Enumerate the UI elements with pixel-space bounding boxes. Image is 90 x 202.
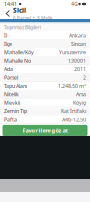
staticText: 2 [83, 74, 86, 81]
staticText: Sicil [13, 6, 26, 15]
staticText: Kat İrtifakı [61, 108, 86, 115]
staticText: 4G [71, 1, 77, 7]
staticText: Mevkii [4, 99, 20, 106]
button[interactable]: Geri [3, 8, 13, 19]
staticText: Ada [4, 66, 13, 73]
staticText: Taşınmaz Bilgileri [4, 24, 41, 31]
staticText: Yunusemre [59, 49, 86, 56]
staticText: Mahalle/Köy [4, 49, 34, 56]
staticText: Pafta [4, 116, 17, 123]
staticText: 2011 [74, 66, 86, 73]
staticText: Parsel [4, 74, 18, 81]
staticText: 1.248,50 m² [58, 82, 86, 89]
staticText: 6 Parsel • 3 Malik [13, 15, 52, 21]
staticText: Mahalle No [4, 57, 31, 64]
staticText: Nitelik [4, 91, 19, 98]
staticText: İl [4, 32, 7, 39]
staticText: Zemin Tip [4, 108, 27, 115]
staticText: A4b-12,50 [62, 116, 86, 123]
staticText: Tapu Alanı [4, 82, 27, 89]
staticText: Arsa [76, 91, 86, 98]
staticText: 14:41 [4, 0, 17, 8]
staticText: Ankara [69, 32, 86, 39]
staticText: İlçe [4, 40, 12, 47]
button[interactable]: Favorilere göz at [2, 125, 87, 136]
staticText: Köyiçi [73, 99, 86, 106]
staticText: Sincan [71, 40, 86, 47]
staticText: Favorilere göz at [22, 127, 67, 134]
staticText: 130001 [68, 57, 86, 64]
